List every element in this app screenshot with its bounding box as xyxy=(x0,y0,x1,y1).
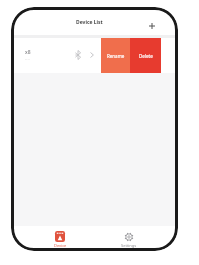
button[interactable] xyxy=(147,21,157,31)
staticText: Device xyxy=(54,243,67,248)
button[interactable]: Delete xyxy=(130,38,161,73)
button[interactable]: Rename xyxy=(101,38,130,73)
staticText: Settings xyxy=(121,243,137,248)
staticText: Rename xyxy=(107,53,125,59)
button[interactable]: x8 xyxy=(14,38,175,73)
staticText: Delete xyxy=(139,53,153,59)
staticText: x8 xyxy=(25,49,31,56)
button[interactable]: Settings xyxy=(104,232,154,248)
staticText: Device List xyxy=(76,19,103,26)
staticText: -- .. xyxy=(25,56,31,61)
button[interactable]: Device xyxy=(35,231,85,248)
